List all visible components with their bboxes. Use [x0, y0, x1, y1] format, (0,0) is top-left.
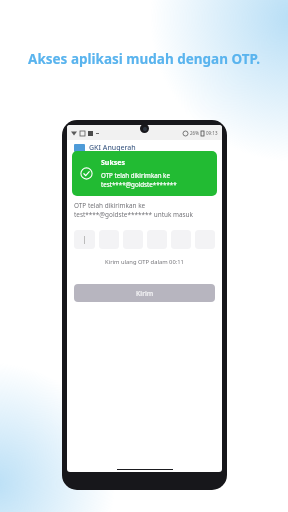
- staticText: Kirim: [136, 289, 154, 298]
- staticText: 26%: [190, 130, 199, 136]
- staticText: OTP telah dikirimkan ke test****@goldste…: [74, 201, 193, 219]
- staticText: OTP telah dikirimkan ke test****@goldste…: [101, 171, 177, 189]
- staticText: 09:13: [206, 130, 218, 136]
- other: Sukses: [80, 167, 93, 180]
- staticText: Sukses: [101, 158, 125, 168]
- button[interactable]: Sukses: [72, 151, 217, 196]
- button[interactable]: Kirim: [74, 284, 215, 302]
- staticText: Kirim ulang OTP dalam 00:11: [74, 258, 215, 266]
- staticText: Akses aplikasi mudah dengan OTP.: [18, 50, 270, 68]
- staticText: GKI Anugerah: [89, 143, 136, 153]
- button[interactable]: OTP digit 1: [74, 230, 95, 249]
